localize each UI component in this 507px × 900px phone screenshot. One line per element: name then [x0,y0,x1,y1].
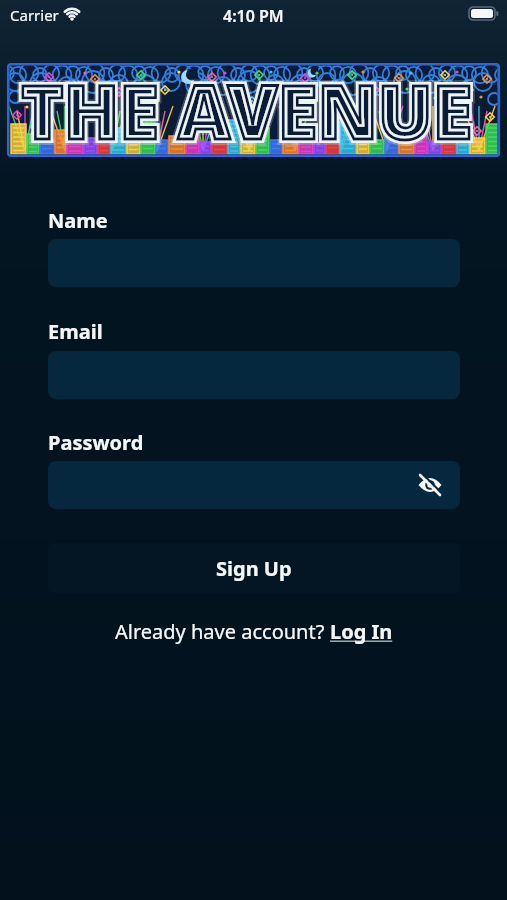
staticText: 4:10 PM [223,5,284,27]
staticText: Log In [330,618,393,645]
staticText: Name [48,207,108,234]
staticText: Email [48,318,103,345]
staticText: Carrier [10,5,59,25]
staticText: Already have account? [115,618,330,645]
staticText: Sign Up [216,555,292,582]
staticText: Password [48,429,144,456]
